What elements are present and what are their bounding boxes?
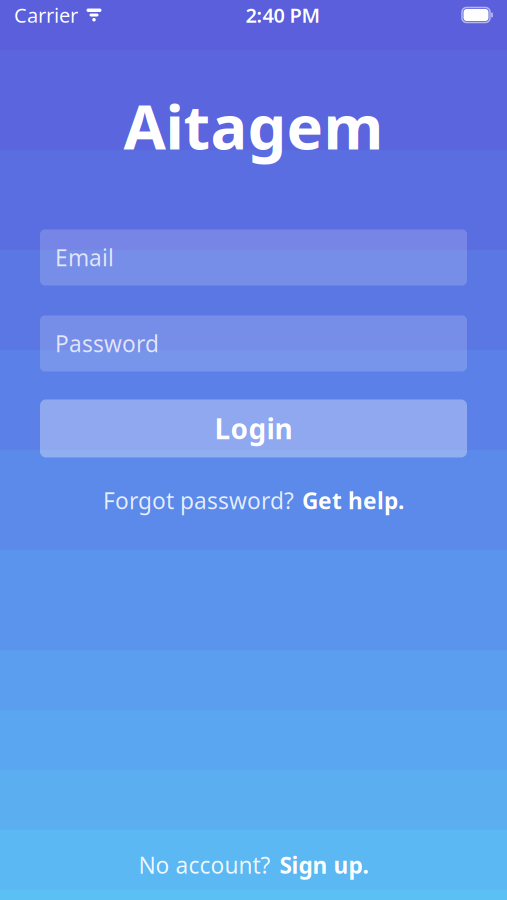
button[interactable]: Login — [40, 399, 467, 457]
staticText: Password — [55, 328, 159, 358]
staticText: 2:40 PM — [245, 2, 320, 28]
button[interactable]: Sign up. — [270, 850, 368, 880]
staticText: Get help. — [302, 485, 404, 515]
staticText: Sign up. — [279, 850, 368, 880]
staticText: Forgot password? — [103, 485, 294, 515]
staticText: Login — [214, 410, 292, 447]
staticText: Aitagem — [123, 85, 383, 166]
staticText: Email — [55, 242, 114, 272]
staticText: Carrier — [14, 2, 78, 28]
button[interactable]: Get help. — [294, 485, 404, 515]
staticText: No account? — [138, 850, 270, 880]
